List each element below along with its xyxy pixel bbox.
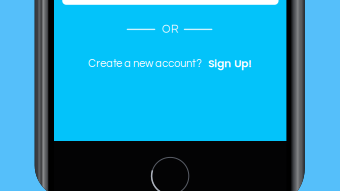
button[interactable]: Create a new account? (88, 56, 252, 71)
staticText: Sign Up! (208, 56, 252, 71)
staticText: OR (162, 24, 179, 35)
button[interactable]: Home (148, 154, 192, 191)
staticText: Create a new account? (88, 58, 202, 69)
